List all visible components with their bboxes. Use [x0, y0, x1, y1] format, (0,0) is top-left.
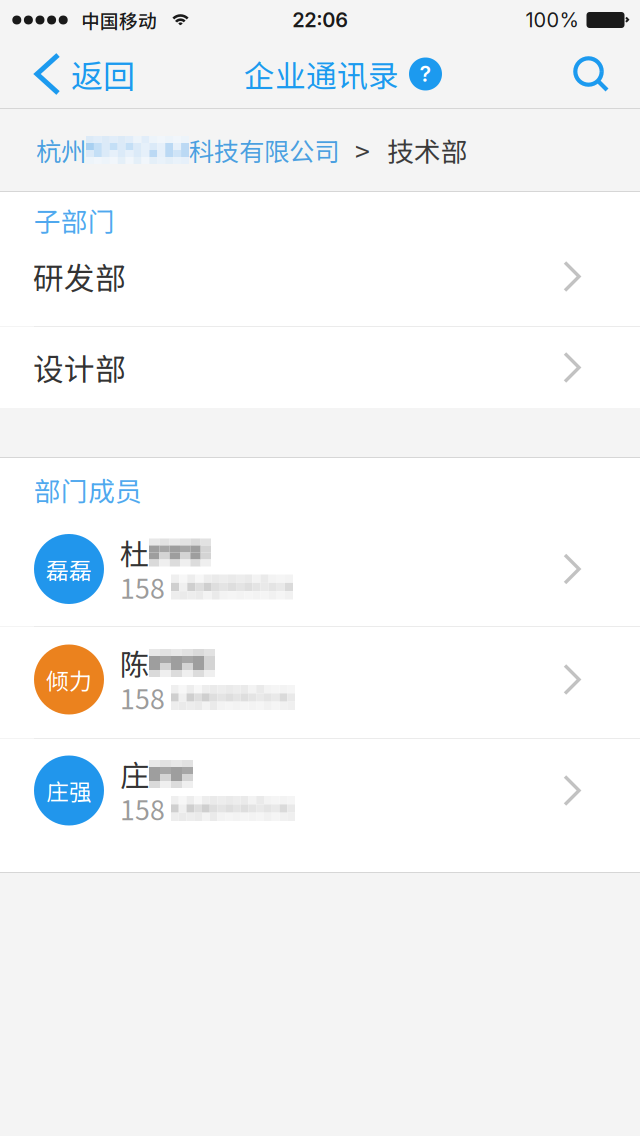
button[interactable]: 设计部 [0, 327, 640, 408]
staticText: 庄强 [46, 774, 92, 807]
button[interactable]: 研发部 [0, 245, 640, 326]
button[interactable]: 倾力 [0, 627, 640, 738]
staticText: 部门成员 [34, 470, 142, 509]
staticText: 22:06 [292, 8, 348, 32]
staticText: ? [419, 61, 431, 87]
staticText: 158 [120, 789, 165, 828]
staticText: 磊磊 [46, 553, 92, 585]
staticText: 100% [525, 8, 578, 32]
staticText: 158 [120, 678, 165, 717]
staticText: 庄 [120, 753, 149, 795]
button[interactable]: 企业通讯录 [244, 40, 442, 108]
button[interactable]: 庄强 [0, 739, 640, 872]
staticText: 子部门 [34, 201, 115, 239]
staticText: 158 [120, 568, 165, 606]
staticText: 企业通讯录 [244, 52, 399, 96]
staticText: 设计部 [33, 345, 126, 390]
button[interactable]: 杭州 [0, 109, 640, 191]
staticText: 杜 [120, 531, 149, 574]
staticText: 科技有限公司 [189, 132, 339, 168]
staticText: 陈 [120, 642, 149, 684]
staticText: 中国移动 [81, 6, 157, 33]
staticText: 倾力 [46, 663, 92, 696]
staticText: 杭州 [36, 132, 86, 168]
staticText: 研发部 [33, 254, 126, 299]
staticText: 返回 [71, 51, 135, 97]
staticText: 技术部 [387, 131, 468, 169]
button[interactable]: 磊磊 [0, 512, 640, 626]
staticText: > [355, 131, 370, 169]
button[interactable]: Search [558, 40, 640, 108]
button[interactable]: 返回 [0, 40, 149, 108]
